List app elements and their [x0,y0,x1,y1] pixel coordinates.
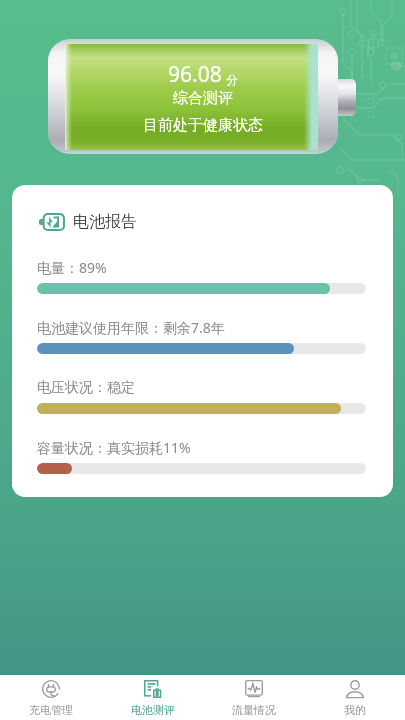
staticText: 流量情况 [232,703,276,717]
button[interactable]: 流量情况 [203,675,304,717]
button[interactable]: 充电管理 [0,675,102,717]
staticText: 容量状况：真实损耗11% [37,438,191,457]
staticText: 电池建议使用年限：剩余7.8年 [37,318,225,337]
staticText: 电池测评 [131,703,175,717]
staticText: 电量：89% [37,258,107,277]
staticText: 电池报告 [73,212,137,232]
staticText: 综合测评 [173,89,233,108]
staticText: 分 [226,72,238,87]
button[interactable]: 电池测评 [102,675,203,717]
staticText: 96.08 [168,60,222,89]
staticText: 我的 [344,703,366,717]
staticText: 电压状况：稳定 [37,379,135,397]
button[interactable]: 我的 [304,675,405,717]
staticText: 充电管理 [29,703,73,717]
staticText: 目前处于健康状态 [143,116,263,135]
